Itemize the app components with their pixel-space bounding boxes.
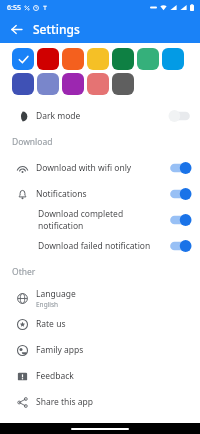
- staticText: Language: [36, 288, 76, 300]
- staticText: Download with wifi only: [36, 162, 132, 174]
- button[interactable]: Color option: [137, 48, 159, 70]
- staticText: Feedback: [36, 370, 74, 382]
- button[interactable]: Share this app: [0, 389, 200, 415]
- button[interactable]: Download with wifi only: [0, 155, 200, 181]
- button[interactable]: Color option: [37, 73, 59, 95]
- button[interactable]: Download failed notification: [0, 233, 200, 259]
- button[interactable]: Color option: [12, 48, 34, 70]
- staticText: 6:55: [7, 3, 21, 13]
- button[interactable]: Color option: [112, 73, 134, 95]
- button[interactable]: On: [168, 161, 192, 175]
- button[interactable]: On: [168, 213, 192, 227]
- button[interactable]: Color option: [62, 73, 84, 95]
- button[interactable]: On: [168, 239, 192, 253]
- button[interactable]: Off: [168, 109, 192, 123]
- staticText: Rate us: [36, 318, 66, 330]
- button[interactable]: Color option: [37, 48, 59, 70]
- staticText: Settings: [33, 21, 80, 37]
- button[interactable]: Feedback: [0, 363, 200, 389]
- button[interactable]: Color option: [62, 48, 84, 70]
- staticText: Family apps: [36, 344, 84, 356]
- button[interactable]: Download completed notification: [0, 207, 200, 233]
- staticText: Notifications: [36, 188, 87, 200]
- button[interactable]: On: [168, 187, 192, 201]
- staticText: English: [36, 300, 59, 309]
- button[interactable]: Rate us: [0, 311, 200, 337]
- button[interactable]: Color option: [87, 73, 109, 95]
- staticText: Share this app: [36, 396, 94, 408]
- staticText: Dark mode: [36, 110, 81, 122]
- button[interactable]: Back: [5, 18, 27, 40]
- staticText: Other: [12, 266, 36, 278]
- button[interactable]: Language: [0, 285, 200, 311]
- staticText: Download: [12, 136, 53, 148]
- button[interactable]: Notifications: [0, 181, 200, 207]
- button[interactable]: Color option: [112, 48, 134, 70]
- staticText: Download failed notification: [38, 240, 151, 252]
- button[interactable]: Color option: [87, 48, 109, 70]
- staticText: Download completed notification: [38, 208, 168, 232]
- button[interactable]: Color option: [162, 48, 184, 70]
- button[interactable]: Color option: [12, 73, 34, 95]
- button[interactable]: Family apps: [0, 337, 200, 363]
- button[interactable]: Dark mode: [0, 103, 200, 129]
